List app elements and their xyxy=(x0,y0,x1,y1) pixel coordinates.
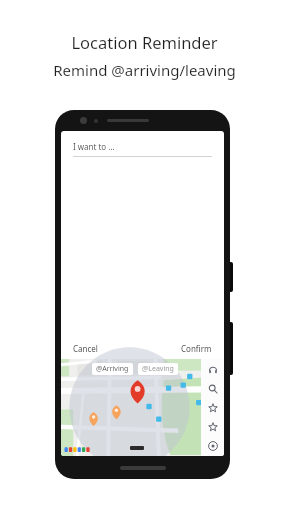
button[interactable]: I want to ... xyxy=(61,131,224,157)
button[interactable]: My location xyxy=(204,437,221,454)
button[interactable]: Cancel xyxy=(71,341,100,356)
button[interactable]: Confirm xyxy=(179,341,214,356)
button[interactable]: @Leaving xyxy=(138,363,178,375)
button[interactable]: Saved places xyxy=(204,399,221,416)
button[interactable]: Search xyxy=(204,380,221,397)
staticText: Remind @arriving/leaving xyxy=(53,60,236,80)
staticText: Confirm xyxy=(181,343,212,354)
staticText: Cancel xyxy=(73,343,98,354)
button[interactable]: Favorites xyxy=(204,418,221,435)
staticText: Location Reminder xyxy=(71,31,218,53)
button[interactable]: @Arriving xyxy=(92,363,133,375)
staticText: @Arriving xyxy=(96,364,129,374)
staticText: I want to ... xyxy=(73,141,115,152)
button[interactable]: Street view xyxy=(204,361,221,378)
staticText: @Leaving xyxy=(142,364,174,374)
